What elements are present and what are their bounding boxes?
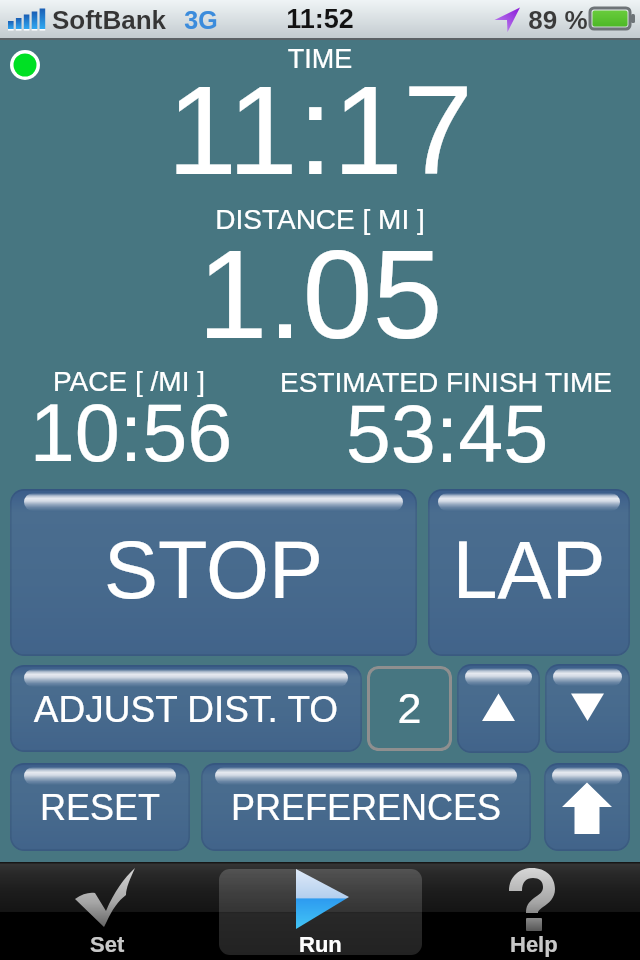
staticText: Run <box>299 932 342 957</box>
staticText: ESTIMATED FINISH TIME <box>252 367 640 398</box>
staticText: 3G <box>171 6 231 34</box>
button[interactable]: STOP <box>10 489 417 656</box>
staticText: 10:56 <box>0 388 262 478</box>
staticText: DISTANCE [ MI ] <box>0 204 640 235</box>
staticText: 11:17 <box>0 60 640 201</box>
staticText: TIME <box>0 44 640 74</box>
button[interactable]: Set <box>0 862 214 960</box>
button[interactable]: Increase distance <box>457 664 540 753</box>
button[interactable]: Run <box>214 862 427 960</box>
button[interactable]: Decrease distance <box>545 664 630 753</box>
staticText: STOP <box>10 525 417 615</box>
staticText: ADJUST DIST. TO <box>10 689 362 730</box>
staticText: 1.05 <box>0 224 640 365</box>
staticText: SoftBank <box>40 5 178 34</box>
staticText: RESET <box>10 787 190 827</box>
staticText: 89 % <box>528 5 588 34</box>
staticText: Set <box>90 932 125 957</box>
button[interactable]: Help <box>427 862 640 960</box>
staticText: LAP <box>428 525 630 615</box>
button[interactable]: Share <box>544 763 630 851</box>
button[interactable]: PREFERENCES <box>201 763 531 851</box>
staticText: PREFERENCES <box>201 787 531 827</box>
staticText: 2 <box>367 684 452 732</box>
staticText: Help <box>510 932 558 957</box>
button[interactable]: 2 <box>367 666 452 751</box>
button[interactable]: ADJUST DIST. TO <box>10 665 362 752</box>
staticText: 11:52 <box>270 4 370 34</box>
staticText: PACE [ /MI ] <box>0 366 258 397</box>
staticText: 53:45 <box>254 389 640 479</box>
button[interactable]: LAP <box>428 489 630 656</box>
button[interactable]: RESET <box>10 763 190 851</box>
